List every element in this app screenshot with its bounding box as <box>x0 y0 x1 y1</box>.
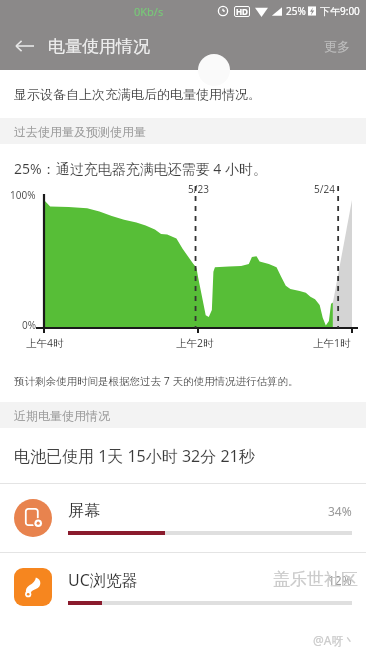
button[interactable]: 更多 <box>308 26 366 66</box>
staticText: 0Kb/s <box>134 4 164 19</box>
staticText: 上午1时 <box>313 336 351 350</box>
staticText: 0% <box>22 318 37 332</box>
button[interactable]: UC浏览器 <box>0 553 366 621</box>
staticText: 5/23 <box>188 182 209 196</box>
staticText: 12% <box>328 572 352 588</box>
staticText: 25% <box>286 4 306 18</box>
staticText: 100% <box>10 188 36 202</box>
staticText: 电池已使用 1天 15小时 32分 21秒 <box>14 445 255 467</box>
staticText: @A呀丶 <box>313 632 356 648</box>
staticText: 上午4时 <box>26 336 64 350</box>
staticText: 预计剩余使用时间是根据您过去 7 天的使用情况进行估算的。 <box>14 374 299 388</box>
staticText: 屏幕 <box>68 501 100 521</box>
staticText: 上午2时 <box>176 336 214 350</box>
staticText: 5/24 <box>314 182 335 196</box>
staticText: 下午9:00 <box>320 4 360 18</box>
staticText: 近期电量使用情况 <box>14 408 110 423</box>
button[interactable]: 屏幕 <box>0 484 366 552</box>
staticText: 盖乐世社区 <box>273 569 358 590</box>
staticText: HD <box>236 6 248 17</box>
staticText: 25%：通过充电器充满电还需要 4 小时。 <box>14 159 267 178</box>
staticText: 过去使用量及预测使用量 <box>14 124 146 139</box>
button[interactable]: 返回 <box>0 22 48 70</box>
staticText: 34% <box>328 503 352 519</box>
staticText: 显示设备自上次充满电后的电量使用情况。 <box>14 86 261 102</box>
staticText: 电量使用情况 <box>48 36 150 57</box>
staticText: UC浏览器 <box>68 569 138 591</box>
staticText: 更多 <box>324 38 350 54</box>
